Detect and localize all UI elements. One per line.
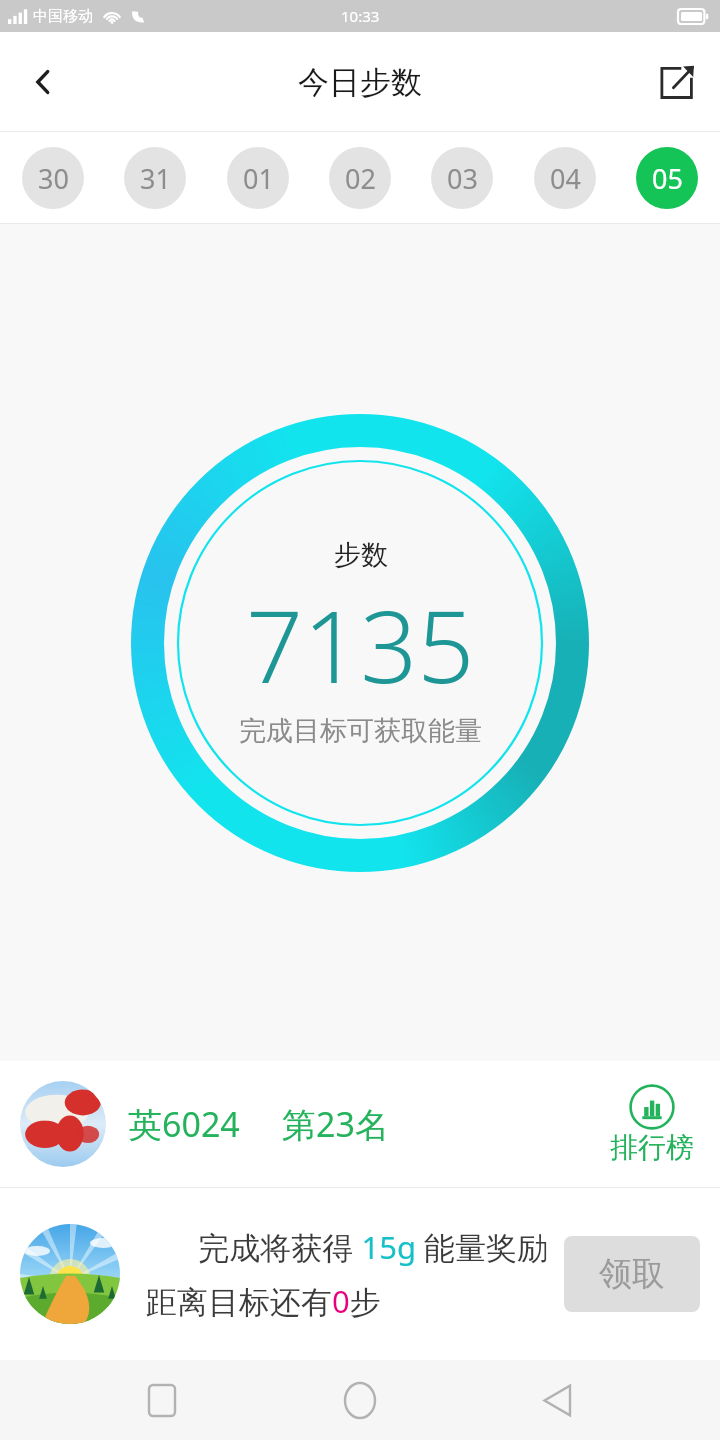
button[interactable]: 03: [431, 147, 493, 209]
staticText: 05: [652, 160, 683, 197]
button[interactable]: 英6024: [0, 1061, 720, 1187]
staticText: 距离目标还有0步: [146, 1280, 548, 1322]
button[interactable]: 领取: [564, 1236, 700, 1312]
staticText: 英6024: [128, 1101, 240, 1147]
button[interactable]: 01: [227, 147, 289, 209]
staticText: 中国移动: [33, 7, 93, 26]
staticText: 今日步数: [298, 63, 422, 102]
staticText: 30: [38, 160, 69, 197]
button[interactable]: 排行榜: [604, 1084, 700, 1165]
button[interactable]: 02: [329, 147, 391, 209]
staticText: 31: [140, 160, 171, 197]
button[interactable]: 04: [534, 147, 596, 209]
button[interactable]: Back: [14, 53, 72, 111]
staticText: 完成将获得 15g 能量奖励: [146, 1226, 548, 1268]
staticText: 领取: [599, 1253, 665, 1295]
button[interactable]: Home: [324, 1364, 396, 1436]
button[interactable]: Back: [522, 1364, 594, 1436]
button[interactable]: 31: [124, 147, 186, 209]
staticText: 01: [243, 160, 274, 197]
button[interactable]: 05: [636, 147, 698, 209]
staticText: 10:33: [341, 6, 380, 26]
staticText: 第23名: [282, 1101, 389, 1147]
staticText: 02: [345, 160, 376, 197]
staticText: 完成目标可获取能量: [239, 714, 482, 748]
staticText: 04: [550, 160, 581, 197]
staticText: 03: [447, 160, 478, 197]
staticText: 7135: [246, 576, 475, 712]
button[interactable]: Share: [648, 53, 706, 111]
staticText: 步数: [334, 538, 388, 572]
button[interactable]: 30: [22, 147, 84, 209]
staticText: 排行榜: [610, 1130, 694, 1165]
button[interactable]: Recents: [126, 1364, 198, 1436]
